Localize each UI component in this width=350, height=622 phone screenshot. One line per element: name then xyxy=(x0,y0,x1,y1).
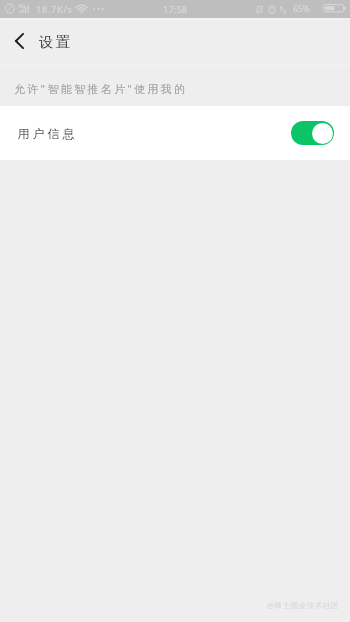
staticText: 65% xyxy=(293,3,310,15)
staticText: 用户信息 xyxy=(16,126,76,141)
staticText: @稀土掘金技术社区 xyxy=(267,600,340,610)
button[interactable]: Back xyxy=(0,23,38,58)
staticText: 设置 xyxy=(38,33,71,51)
button[interactable]: User information toggle xyxy=(291,121,334,145)
button[interactable]: 用户信息 xyxy=(0,106,350,160)
staticText: 4G xyxy=(18,2,26,9)
staticText: 17:58 xyxy=(163,3,188,16)
staticText: 18.7K/s xyxy=(36,3,73,15)
staticText: 允许"智能智推名片"使用我的 xyxy=(14,81,188,95)
